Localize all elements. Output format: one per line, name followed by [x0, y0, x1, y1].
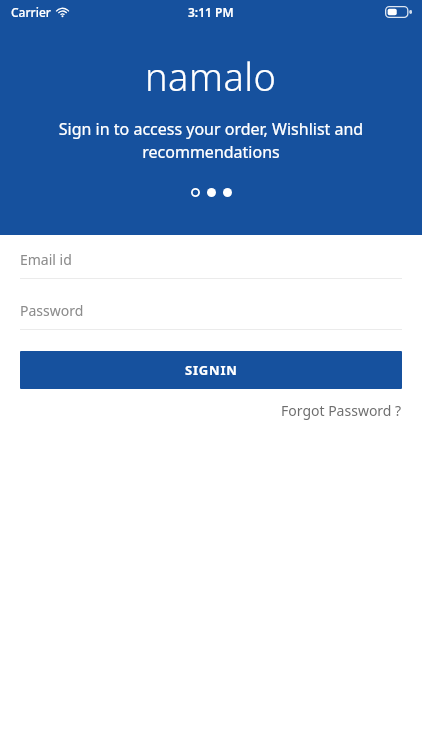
- staticText: Carrier: [11, 4, 51, 20]
- staticText: Email id: [20, 250, 72, 269]
- other: Battery: [385, 6, 412, 18]
- staticText: 3:11 PM: [188, 4, 234, 20]
- button[interactable]: Forgot Password ?: [281, 398, 402, 423]
- button[interactable]: Page 2: [203, 184, 219, 200]
- staticText: SIGNIN: [185, 361, 238, 379]
- button[interactable]: Page 1: [187, 184, 203, 200]
- other: Wi-Fi signal: [56, 7, 69, 17]
- button[interactable]: SIGNIN: [20, 351, 402, 389]
- staticText: namalo: [145, 50, 277, 102]
- staticText: Forgot Password ?: [281, 401, 402, 420]
- button[interactable]: Page 3: [219, 184, 235, 200]
- button[interactable]: Password: [20, 301, 402, 330]
- staticText: Password: [20, 301, 84, 320]
- staticText: Sign in to access your order, Wishlist a…: [34, 118, 388, 163]
- button[interactable]: Email id: [20, 250, 402, 279]
